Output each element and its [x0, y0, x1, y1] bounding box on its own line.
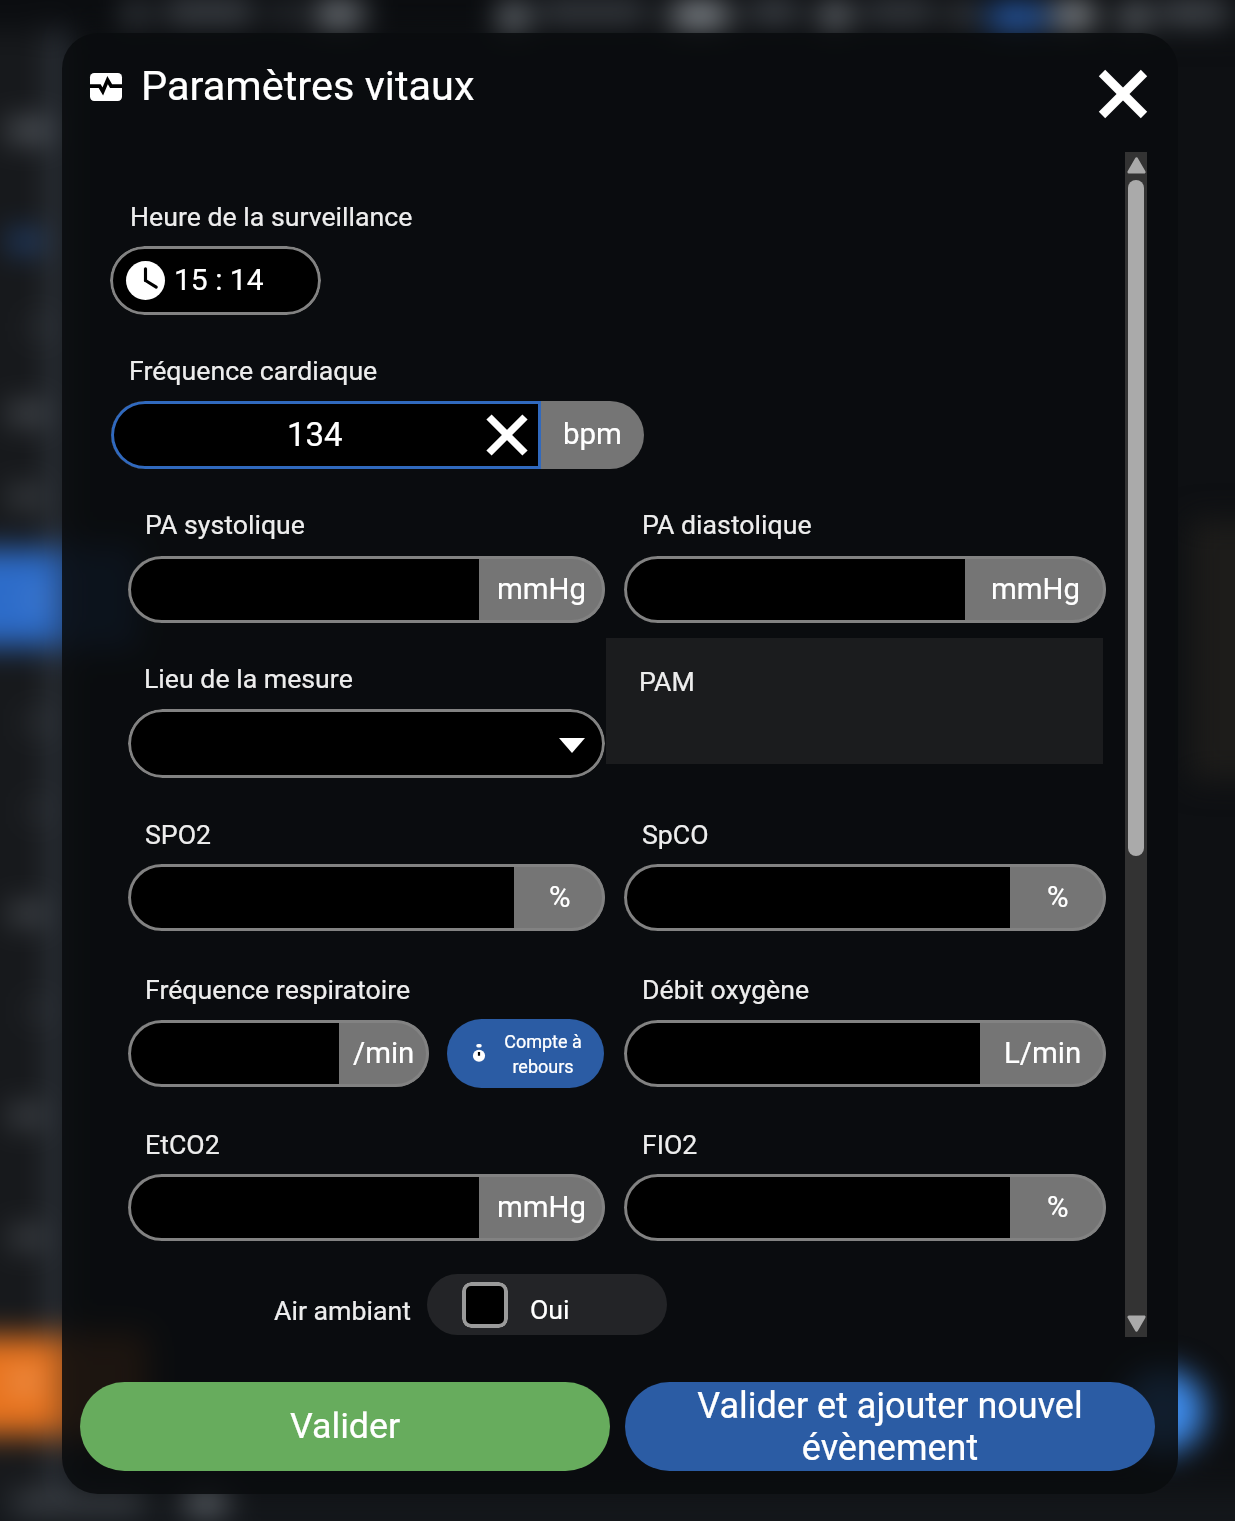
staticText: Fréquence respiratoire — [145, 974, 411, 1005]
staticText: Lieu de la mesure — [144, 663, 353, 694]
button[interactable]: Fermer — [1077, 48, 1169, 140]
staticText: Débit oxygène — [642, 974, 810, 1005]
staticText: Paramètres vitaux — [141, 61, 475, 110]
staticText: Oui — [530, 1294, 570, 1325]
button[interactable]: Lieu de la mesure — [128, 709, 605, 778]
staticText: % — [1047, 880, 1069, 914]
button[interactable]: Valider — [80, 1382, 610, 1471]
button[interactable]: mmHg — [624, 556, 1106, 623]
button[interactable]: 15 : 14 — [110, 246, 321, 315]
button[interactable]: 134 — [111, 401, 644, 469]
staticText: Fréquence cardiaque — [129, 355, 378, 386]
staticText: Valider — [290, 1405, 401, 1447]
button[interactable]: Effacer — [489, 417, 525, 453]
button[interactable]: Oui — [427, 1274, 667, 1335]
button[interactable]: Compte à rebours — [447, 1019, 604, 1088]
staticText: SpCO — [642, 819, 709, 850]
button[interactable]: Défiler vers le bas — [1125, 1310, 1147, 1337]
staticText: Heure de la surveillance — [130, 201, 413, 232]
staticText: bpm — [563, 417, 622, 451]
staticText: SPO2 — [145, 819, 212, 850]
staticText: Valider et ajouter nouvel évènement — [690, 1385, 1090, 1469]
staticText: EtCO2 — [145, 1129, 220, 1160]
staticText: 134 — [287, 415, 343, 454]
button[interactable]: L/min — [624, 1020, 1106, 1087]
button[interactable]: Valider et ajouter nouvel évènement — [625, 1382, 1155, 1471]
staticText: % — [549, 880, 571, 914]
button[interactable]: % — [128, 864, 605, 931]
staticText: PA diastolique — [642, 509, 812, 540]
button[interactable]: Défiler vers le haut — [1125, 152, 1147, 179]
button[interactable]: /min — [128, 1020, 429, 1087]
staticText: mmHg — [497, 572, 587, 606]
staticText: % — [1047, 1190, 1069, 1224]
staticText: Compte à rebours — [495, 1031, 591, 1077]
staticText: PA systolique — [145, 509, 305, 540]
staticText: Air ambiant — [274, 1295, 411, 1326]
button[interactable]: mmHg — [128, 1174, 605, 1241]
button[interactable]: % — [624, 1174, 1106, 1241]
staticText: 15 : 14 — [174, 262, 264, 297]
staticText: /min — [353, 1036, 415, 1070]
button[interactable]: mmHg — [128, 556, 605, 623]
staticText: FIO2 — [642, 1129, 698, 1160]
staticText: mmHg — [991, 572, 1081, 606]
staticText: mmHg — [497, 1190, 587, 1224]
staticText: L/min — [1004, 1036, 1082, 1070]
button[interactable]: % — [624, 864, 1106, 931]
staticText: PAM — [639, 666, 695, 697]
